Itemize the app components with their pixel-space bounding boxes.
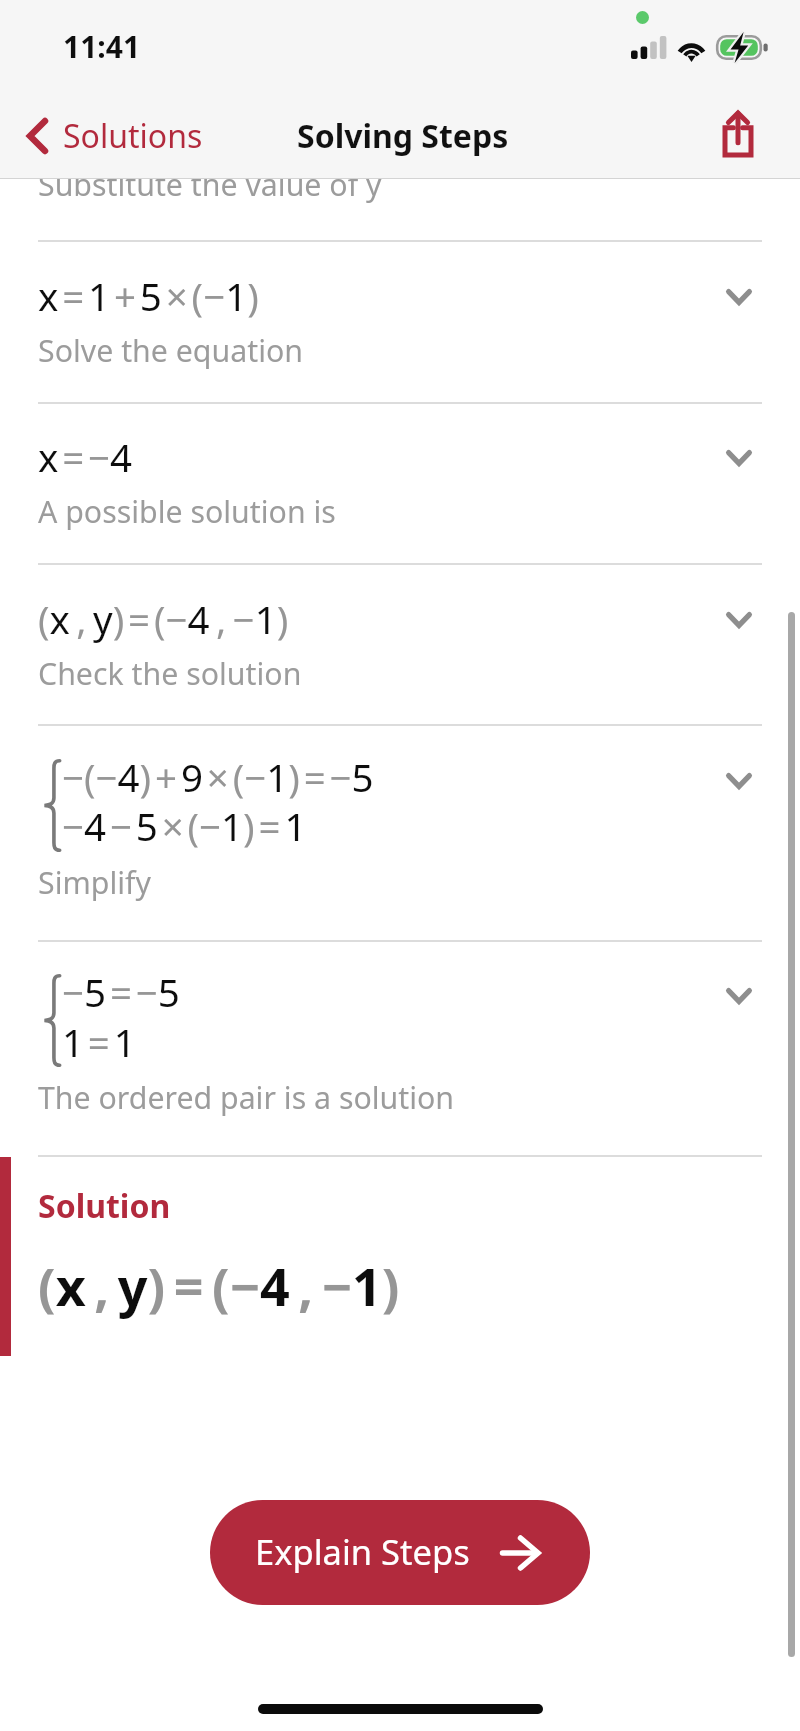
- staticText: Simplify: [38, 862, 151, 903]
- staticText: 11:41: [63, 26, 141, 67]
- staticText: x = −4: [38, 431, 133, 483]
- staticText: −5 = −5: [62, 966, 180, 1018]
- staticText: Solve the equation: [38, 330, 304, 371]
- button[interactable]: [0, 724, 800, 940]
- button[interactable]: Expand step: [711, 592, 767, 648]
- staticText: (x , y) = (−4 , −1): [38, 593, 289, 645]
- staticText: Substitute the value of y: [38, 164, 382, 205]
- button[interactable]: [0, 563, 800, 724]
- staticText: Check the solution: [38, 653, 302, 694]
- button[interactable]: [0, 402, 800, 564]
- staticText: Explain Steps: [255, 1528, 470, 1575]
- staticText: −4 − 5 × (−1) = 1: [62, 800, 307, 852]
- staticText: Solutions: [63, 114, 203, 158]
- button[interactable]: Expand step: [711, 269, 767, 325]
- button[interactable]: Expand step: [711, 753, 767, 809]
- button[interactable]: [0, 940, 800, 1156]
- button[interactable]: Expand step: [711, 968, 767, 1024]
- staticText: Solving Steps: [297, 114, 509, 158]
- staticText: x = 1 + 5 × (−1): [38, 270, 259, 322]
- button[interactable]: Share: [707, 103, 769, 165]
- staticText: The ordered pair is a solution: [38, 1077, 455, 1118]
- button[interactable]: Expand step: [711, 430, 767, 486]
- staticText: (x , y) = (−4 , −1): [38, 1250, 400, 1321]
- staticText: 1 = 1: [62, 1016, 136, 1068]
- button[interactable]: [0, 240, 800, 402]
- staticText: −(−4) + 9 × (−1) = −5: [62, 751, 374, 803]
- staticText: Solution: [38, 1184, 171, 1228]
- button[interactable]: Explain Steps: [210, 1500, 590, 1605]
- staticText: A possible solution is: [38, 491, 336, 532]
- button[interactable]: Solutions: [0, 106, 215, 166]
